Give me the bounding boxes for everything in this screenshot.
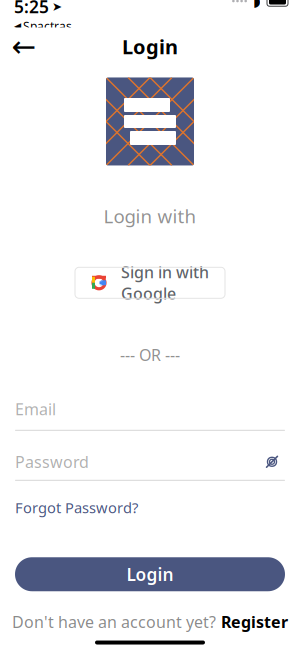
staticText: ←	[11, 30, 36, 63]
staticText: ➤	[52, 0, 62, 13]
staticText: Don't have an account yet?	[12, 611, 216, 632]
staticText: Password	[15, 451, 89, 472]
staticText: Login with	[103, 203, 196, 228]
button[interactable]: Show password	[259, 451, 285, 473]
button[interactable]: Don't have an account yet?	[12, 611, 288, 632]
staticText: Login	[126, 563, 173, 586]
staticText: ◀	[14, 21, 21, 31]
staticText: ◗	[253, 0, 261, 9]
staticText: Forgot Password?	[15, 498, 138, 517]
staticText: Login	[122, 33, 178, 60]
staticText: 5:25	[14, 0, 49, 18]
staticText: --- OR ---	[120, 344, 180, 365]
staticText: Register	[221, 611, 288, 632]
button[interactable]: Forgot Password?	[15, 498, 138, 517]
button[interactable]: Back	[2, 28, 46, 64]
staticText: Spactras	[23, 18, 72, 34]
staticText: Email	[15, 398, 56, 420]
button[interactable]: Sign in with Google	[75, 267, 225, 298]
staticText: Sign in with Google	[121, 261, 209, 304]
button[interactable]: Login	[15, 557, 285, 591]
